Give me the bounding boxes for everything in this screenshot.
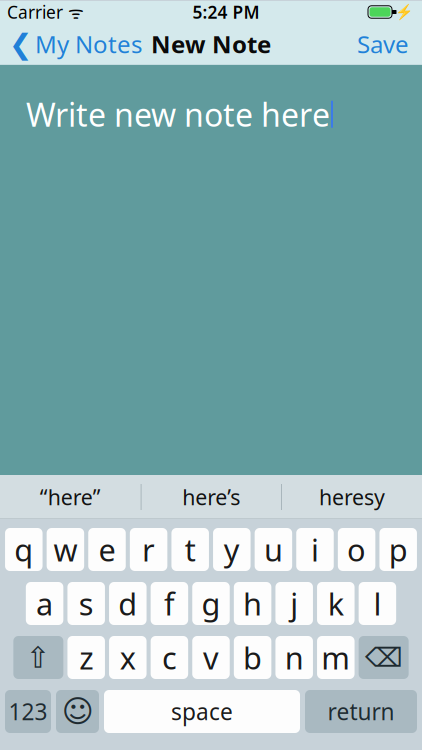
button[interactable]: Emoji	[56, 690, 99, 733]
button[interactable]: Delete	[359, 636, 409, 679]
button[interactable]: Save	[344, 23, 422, 65]
staticText: u	[264, 529, 283, 570]
staticText: space	[171, 696, 233, 726]
staticText: b	[243, 637, 262, 678]
staticText: m	[321, 637, 350, 678]
button[interactable]: t	[171, 528, 209, 571]
button[interactable]: v	[192, 636, 230, 679]
button[interactable]: z	[67, 636, 105, 679]
staticText: s	[79, 583, 94, 624]
button[interactable]: d	[109, 582, 146, 625]
button[interactable]: Numbers	[5, 690, 51, 733]
button[interactable]: heresy	[282, 475, 422, 519]
button[interactable]: f	[151, 582, 188, 625]
button[interactable]: k	[317, 582, 354, 625]
button[interactable]: ❮	[0, 23, 151, 65]
staticText: h	[243, 583, 262, 624]
staticText: p	[389, 529, 408, 570]
button[interactable]: a	[26, 582, 63, 625]
staticText: e	[98, 529, 115, 570]
staticText: d	[118, 583, 137, 624]
button[interactable]: p	[379, 528, 417, 571]
staticText: ⇧	[26, 641, 51, 674]
button[interactable]: j	[275, 582, 313, 625]
staticText: here’s	[182, 483, 240, 511]
staticText: o	[347, 529, 366, 570]
staticText: heresy	[319, 483, 385, 511]
staticText: “here”	[40, 483, 101, 511]
staticText: i	[311, 529, 319, 570]
button[interactable]: w	[47, 528, 84, 571]
staticText: ᯤ	[63, 0, 84, 23]
button[interactable]: h	[234, 582, 271, 625]
button[interactable]: Shift	[13, 636, 63, 679]
staticText: n	[285, 637, 304, 678]
staticText: Write new note here	[26, 93, 330, 135]
button[interactable]: u	[255, 528, 292, 571]
staticText: r	[142, 529, 155, 570]
staticText: c	[162, 637, 177, 678]
staticText: My Notes	[35, 28, 142, 60]
staticText: 123	[8, 696, 47, 726]
staticText: q	[14, 529, 33, 570]
staticText: v	[203, 637, 219, 678]
button[interactable]: here’s	[142, 475, 281, 519]
staticText: New Note	[151, 28, 271, 60]
button[interactable]: x	[109, 636, 146, 679]
button[interactable]: c	[151, 636, 188, 679]
staticText: return	[327, 696, 394, 726]
button[interactable]: e	[88, 528, 126, 571]
staticText: ❮	[9, 28, 32, 60]
staticText: ⚡	[395, 4, 413, 20]
button[interactable]: i	[296, 528, 334, 571]
staticText: y	[224, 529, 240, 570]
button[interactable]: q	[5, 528, 43, 571]
staticText: x	[120, 637, 136, 678]
button[interactable]: y	[213, 528, 251, 571]
staticText: f	[164, 583, 175, 624]
button[interactable]: s	[67, 582, 105, 625]
staticText: t	[185, 529, 196, 570]
button[interactable]: b	[234, 636, 271, 679]
staticText: j	[290, 583, 298, 624]
staticText: k	[328, 583, 344, 624]
staticText: Save	[357, 28, 409, 60]
staticText: w	[53, 529, 77, 570]
button[interactable]: g	[192, 582, 230, 625]
button[interactable]: o	[338, 528, 375, 571]
button[interactable]: m	[317, 636, 355, 679]
button[interactable]: n	[275, 636, 313, 679]
button[interactable]: “here”	[0, 475, 141, 519]
button[interactable]: r	[130, 528, 167, 571]
staticText: g	[201, 583, 220, 624]
staticText: ☺	[61, 694, 93, 729]
staticText: z	[79, 637, 93, 678]
staticText: ⌫	[365, 642, 403, 673]
button[interactable]: return	[305, 690, 417, 733]
staticText: a	[36, 583, 53, 624]
button[interactable]: space	[104, 690, 300, 733]
staticText: l	[373, 583, 381, 624]
button[interactable]: l	[359, 582, 396, 625]
staticText: Carrier	[7, 0, 63, 23]
staticText: 5:24 PM	[192, 0, 259, 23]
